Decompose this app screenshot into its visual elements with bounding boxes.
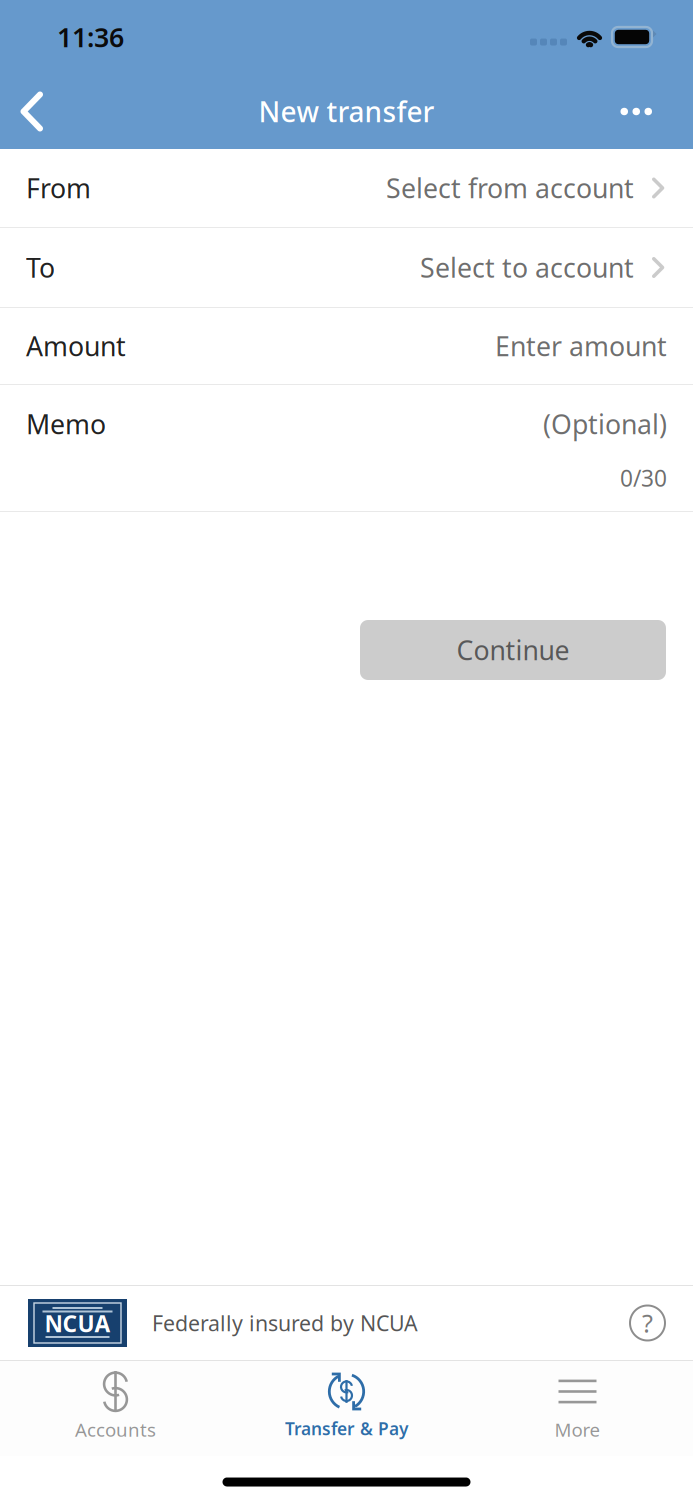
- staticText: Memo: [26, 406, 106, 442]
- button[interactable]: To: [0, 228, 693, 307]
- staticText: Enter amount: [495, 328, 667, 364]
- staticText: Transfer & Pay: [285, 1417, 408, 1440]
- button[interactable]: Amount: [0, 308, 693, 384]
- staticText: ?: [642, 1306, 653, 1340]
- button[interactable]: Continue: [360, 620, 666, 680]
- staticText: Federally insured by NCUA: [152, 1309, 418, 1337]
- button[interactable]: From: [0, 149, 693, 227]
- staticText: NCUA: [44, 1308, 110, 1338]
- staticText: 11:36: [57, 19, 124, 55]
- staticText: (Optional): [543, 406, 667, 442]
- button[interactable]: Transfer & Pay: [231, 1361, 462, 1456]
- button[interactable]: More: [462, 1361, 693, 1456]
- staticText: Select from account: [386, 170, 634, 206]
- staticText: To: [26, 250, 55, 285]
- staticText: From: [26, 170, 91, 206]
- button[interactable]: Back: [0, 74, 70, 149]
- button[interactable]: Memo: [0, 385, 693, 511]
- staticText: Amount: [26, 328, 126, 364]
- button[interactable]: Help: [630, 1305, 665, 1340]
- staticText: Accounts: [75, 1417, 156, 1442]
- staticText: New transfer: [258, 93, 434, 130]
- button[interactable]: Accounts: [0, 1361, 231, 1456]
- button[interactable]: More options: [590, 74, 693, 149]
- staticText: 0/30: [620, 463, 667, 493]
- staticText: Continue: [456, 632, 569, 668]
- staticText: Select to account: [420, 250, 634, 285]
- staticText: More: [554, 1417, 600, 1442]
